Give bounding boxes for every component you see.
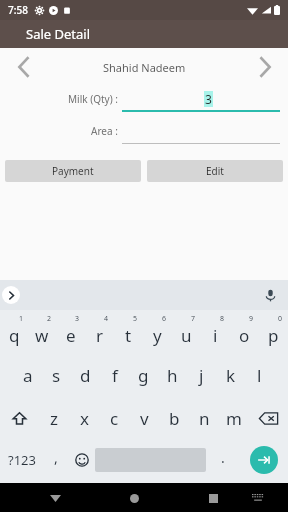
staticText: l	[257, 364, 262, 387]
staticText: u	[181, 324, 192, 347]
button[interactable]: 7	[172, 310, 201, 354]
staticText: b	[169, 407, 180, 430]
staticText: a	[23, 364, 33, 387]
button[interactable]: 6	[143, 310, 172, 354]
button[interactable]: 5	[114, 310, 143, 354]
button[interactable]: Backspace	[249, 397, 288, 439]
button[interactable]: l	[245, 354, 274, 397]
button[interactable]: Expand suggestions	[2, 286, 20, 304]
staticText: 5	[133, 314, 138, 324]
button[interactable]: g	[129, 354, 158, 397]
staticText: i	[213, 324, 218, 347]
button[interactable]: n	[189, 397, 219, 439]
staticText: 1	[19, 314, 24, 324]
staticText: x	[80, 407, 89, 430]
staticText: r	[96, 324, 104, 347]
button[interactable]: m	[219, 397, 249, 439]
staticText: Milk (Qty) :	[68, 92, 118, 106]
button[interactable]: 0	[259, 310, 288, 354]
button[interactable]: Emoji	[69, 439, 95, 481]
button[interactable]: j	[187, 354, 216, 397]
staticText: 0	[278, 314, 283, 324]
staticText: 6	[162, 314, 167, 324]
button[interactable]: k	[216, 354, 245, 397]
staticText: z	[50, 407, 58, 430]
staticText: Area :	[91, 124, 118, 138]
staticText: v	[140, 407, 149, 430]
button[interactable]: z	[39, 397, 69, 439]
staticText: p	[268, 324, 279, 347]
button[interactable]: Switch keyboard	[246, 486, 270, 510]
button[interactable]: c	[99, 397, 129, 439]
staticText: s	[52, 364, 61, 387]
button[interactable]: v	[129, 397, 159, 439]
staticText: Payment	[52, 164, 94, 178]
button[interactable]: 9	[230, 310, 259, 354]
button[interactable]: h	[158, 354, 187, 397]
staticText: ,	[54, 448, 58, 467]
button[interactable]: Payment	[5, 160, 141, 182]
staticText: g	[138, 364, 149, 387]
button[interactable]: Back	[42, 485, 68, 511]
button[interactable]: Enter	[250, 446, 278, 474]
button[interactable]: ,	[43, 439, 69, 481]
staticText: t	[125, 324, 132, 347]
staticText: e	[66, 324, 76, 347]
staticText: j	[199, 364, 204, 387]
staticText: ?123	[8, 451, 36, 469]
button[interactable]: f	[100, 354, 129, 397]
staticText: Edit	[206, 164, 224, 178]
button[interactable]: Edit	[147, 160, 283, 182]
button[interactable]: d	[71, 354, 100, 397]
staticText: 9	[249, 314, 254, 324]
staticText: f	[112, 364, 118, 387]
staticText: 2	[47, 314, 52, 324]
staticText: w	[35, 324, 49, 347]
button[interactable]: 2	[28, 310, 56, 354]
staticText: 3	[75, 314, 80, 324]
button[interactable]: Previous	[0, 48, 46, 86]
staticText: .	[221, 448, 225, 467]
staticText: 7	[191, 314, 196, 324]
staticText: 8	[220, 314, 225, 324]
button[interactable]: s	[42, 354, 71, 397]
button[interactable]: b	[159, 397, 189, 439]
button[interactable]: x	[69, 397, 99, 439]
button[interactable]: a	[14, 354, 42, 397]
button[interactable]: ?123	[0, 439, 43, 481]
staticText: o	[239, 324, 250, 347]
button[interactable]: 8	[201, 310, 230, 354]
button[interactable]: 4	[85, 310, 114, 354]
button[interactable]: 1	[0, 310, 28, 354]
staticText: m	[226, 407, 242, 430]
staticText: k	[226, 364, 236, 387]
staticText: h	[167, 364, 178, 387]
staticText: Sale Detail	[26, 25, 91, 43]
staticText: 4	[104, 314, 109, 324]
button[interactable]: Next	[242, 48, 288, 86]
staticText: d	[80, 364, 91, 387]
staticText: y	[153, 324, 162, 347]
button[interactable]: Recents	[200, 485, 226, 511]
button[interactable]: .	[206, 439, 240, 481]
staticText: 7:58	[8, 3, 28, 17]
button[interactable]: Home	[121, 485, 147, 511]
staticText: 3	[205, 91, 212, 107]
staticText: n	[199, 407, 210, 430]
button[interactable]: 3	[56, 310, 85, 354]
staticText: c	[110, 407, 119, 430]
staticText: q	[9, 324, 20, 347]
staticText: Shahid Nadeem	[103, 60, 186, 75]
button[interactable]: Shift	[0, 397, 39, 439]
button[interactable]: Voice input	[260, 285, 280, 305]
